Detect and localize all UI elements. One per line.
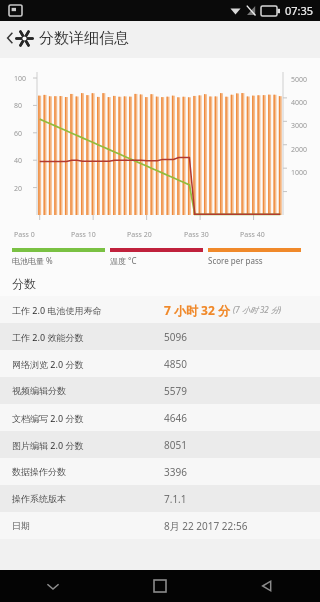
button[interactable]: 视频编辑分数 (0, 377, 320, 404)
staticText: 8月 22 2017 22:56 (164, 519, 248, 533)
staticText: 60 (14, 129, 23, 139)
staticText: Pass 40 (240, 230, 265, 240)
button[interactable]: Home (106, 570, 213, 602)
staticText: 4000 (291, 98, 308, 108)
staticText: 80 (14, 101, 23, 111)
button[interactable]: 工作 2.0 效能分数 (0, 323, 320, 350)
button[interactable]: 图片编辑 2.0 分数 (0, 431, 320, 458)
button[interactable]: 文档编写 2.0 分数 (0, 404, 320, 431)
staticText: Pass 20 (127, 230, 152, 240)
button[interactable]: 分数详细信息 (0, 21, 320, 55)
staticText: Pass 10 (71, 230, 96, 240)
staticText: Pass 0 (14, 230, 35, 240)
staticText: 文档编写 2.0 分数 (12, 412, 164, 424)
staticText: 100 (14, 74, 27, 84)
button[interactable]: 日期 (0, 512, 320, 539)
staticText: 7 小时 32 分 (164, 302, 230, 318)
staticText: Score per pass (208, 255, 263, 266)
button[interactable]: Back (0, 570, 106, 602)
button[interactable]: 网络浏览 2.0 分数 (0, 350, 320, 377)
button[interactable]: 工作 2.0 电池使用寿命 (0, 296, 320, 323)
staticText: 图片编辑 2.0 分数 (12, 439, 164, 451)
staticText: 1000 (291, 168, 308, 178)
staticText: 电池电量 % (12, 255, 53, 266)
staticText: 工作 2.0 电池使用寿命 (12, 304, 164, 316)
staticText: 5579 (164, 384, 187, 398)
staticText: 8051 (164, 438, 187, 452)
staticText: (7 小时 32 分) (233, 304, 282, 315)
staticText: 温度 °C (110, 255, 137, 266)
staticText: 视频编辑分数 (12, 385, 164, 396)
staticText: 分数 (12, 276, 36, 291)
button[interactable]: Recents (213, 570, 320, 602)
staticText: 5000 (291, 75, 308, 85)
staticText: 5096 (164, 330, 187, 344)
staticText: 分数详细信息 (39, 29, 129, 48)
staticText: 07:35 (285, 3, 314, 18)
staticText: 7.1.1 (164, 492, 187, 506)
staticText: 数据操作分数 (12, 466, 164, 477)
staticText: 2000 (291, 145, 308, 155)
staticText: 3396 (164, 465, 187, 479)
staticText: 网络浏览 2.0 分数 (12, 358, 164, 370)
staticText: 4646 (164, 411, 187, 425)
staticText: 4850 (164, 357, 187, 371)
staticText: Pass 30 (184, 230, 209, 240)
staticText: 操作系统版本 (12, 493, 164, 504)
button[interactable]: 数据操作分数 (0, 458, 320, 485)
staticText: 20 (14, 184, 23, 194)
staticText: 工作 2.0 效能分数 (12, 331, 164, 343)
staticText: 40 (14, 156, 23, 166)
staticText: 3000 (291, 121, 308, 131)
button[interactable]: 操作系统版本 (0, 485, 320, 512)
staticText: 日期 (12, 520, 164, 531)
